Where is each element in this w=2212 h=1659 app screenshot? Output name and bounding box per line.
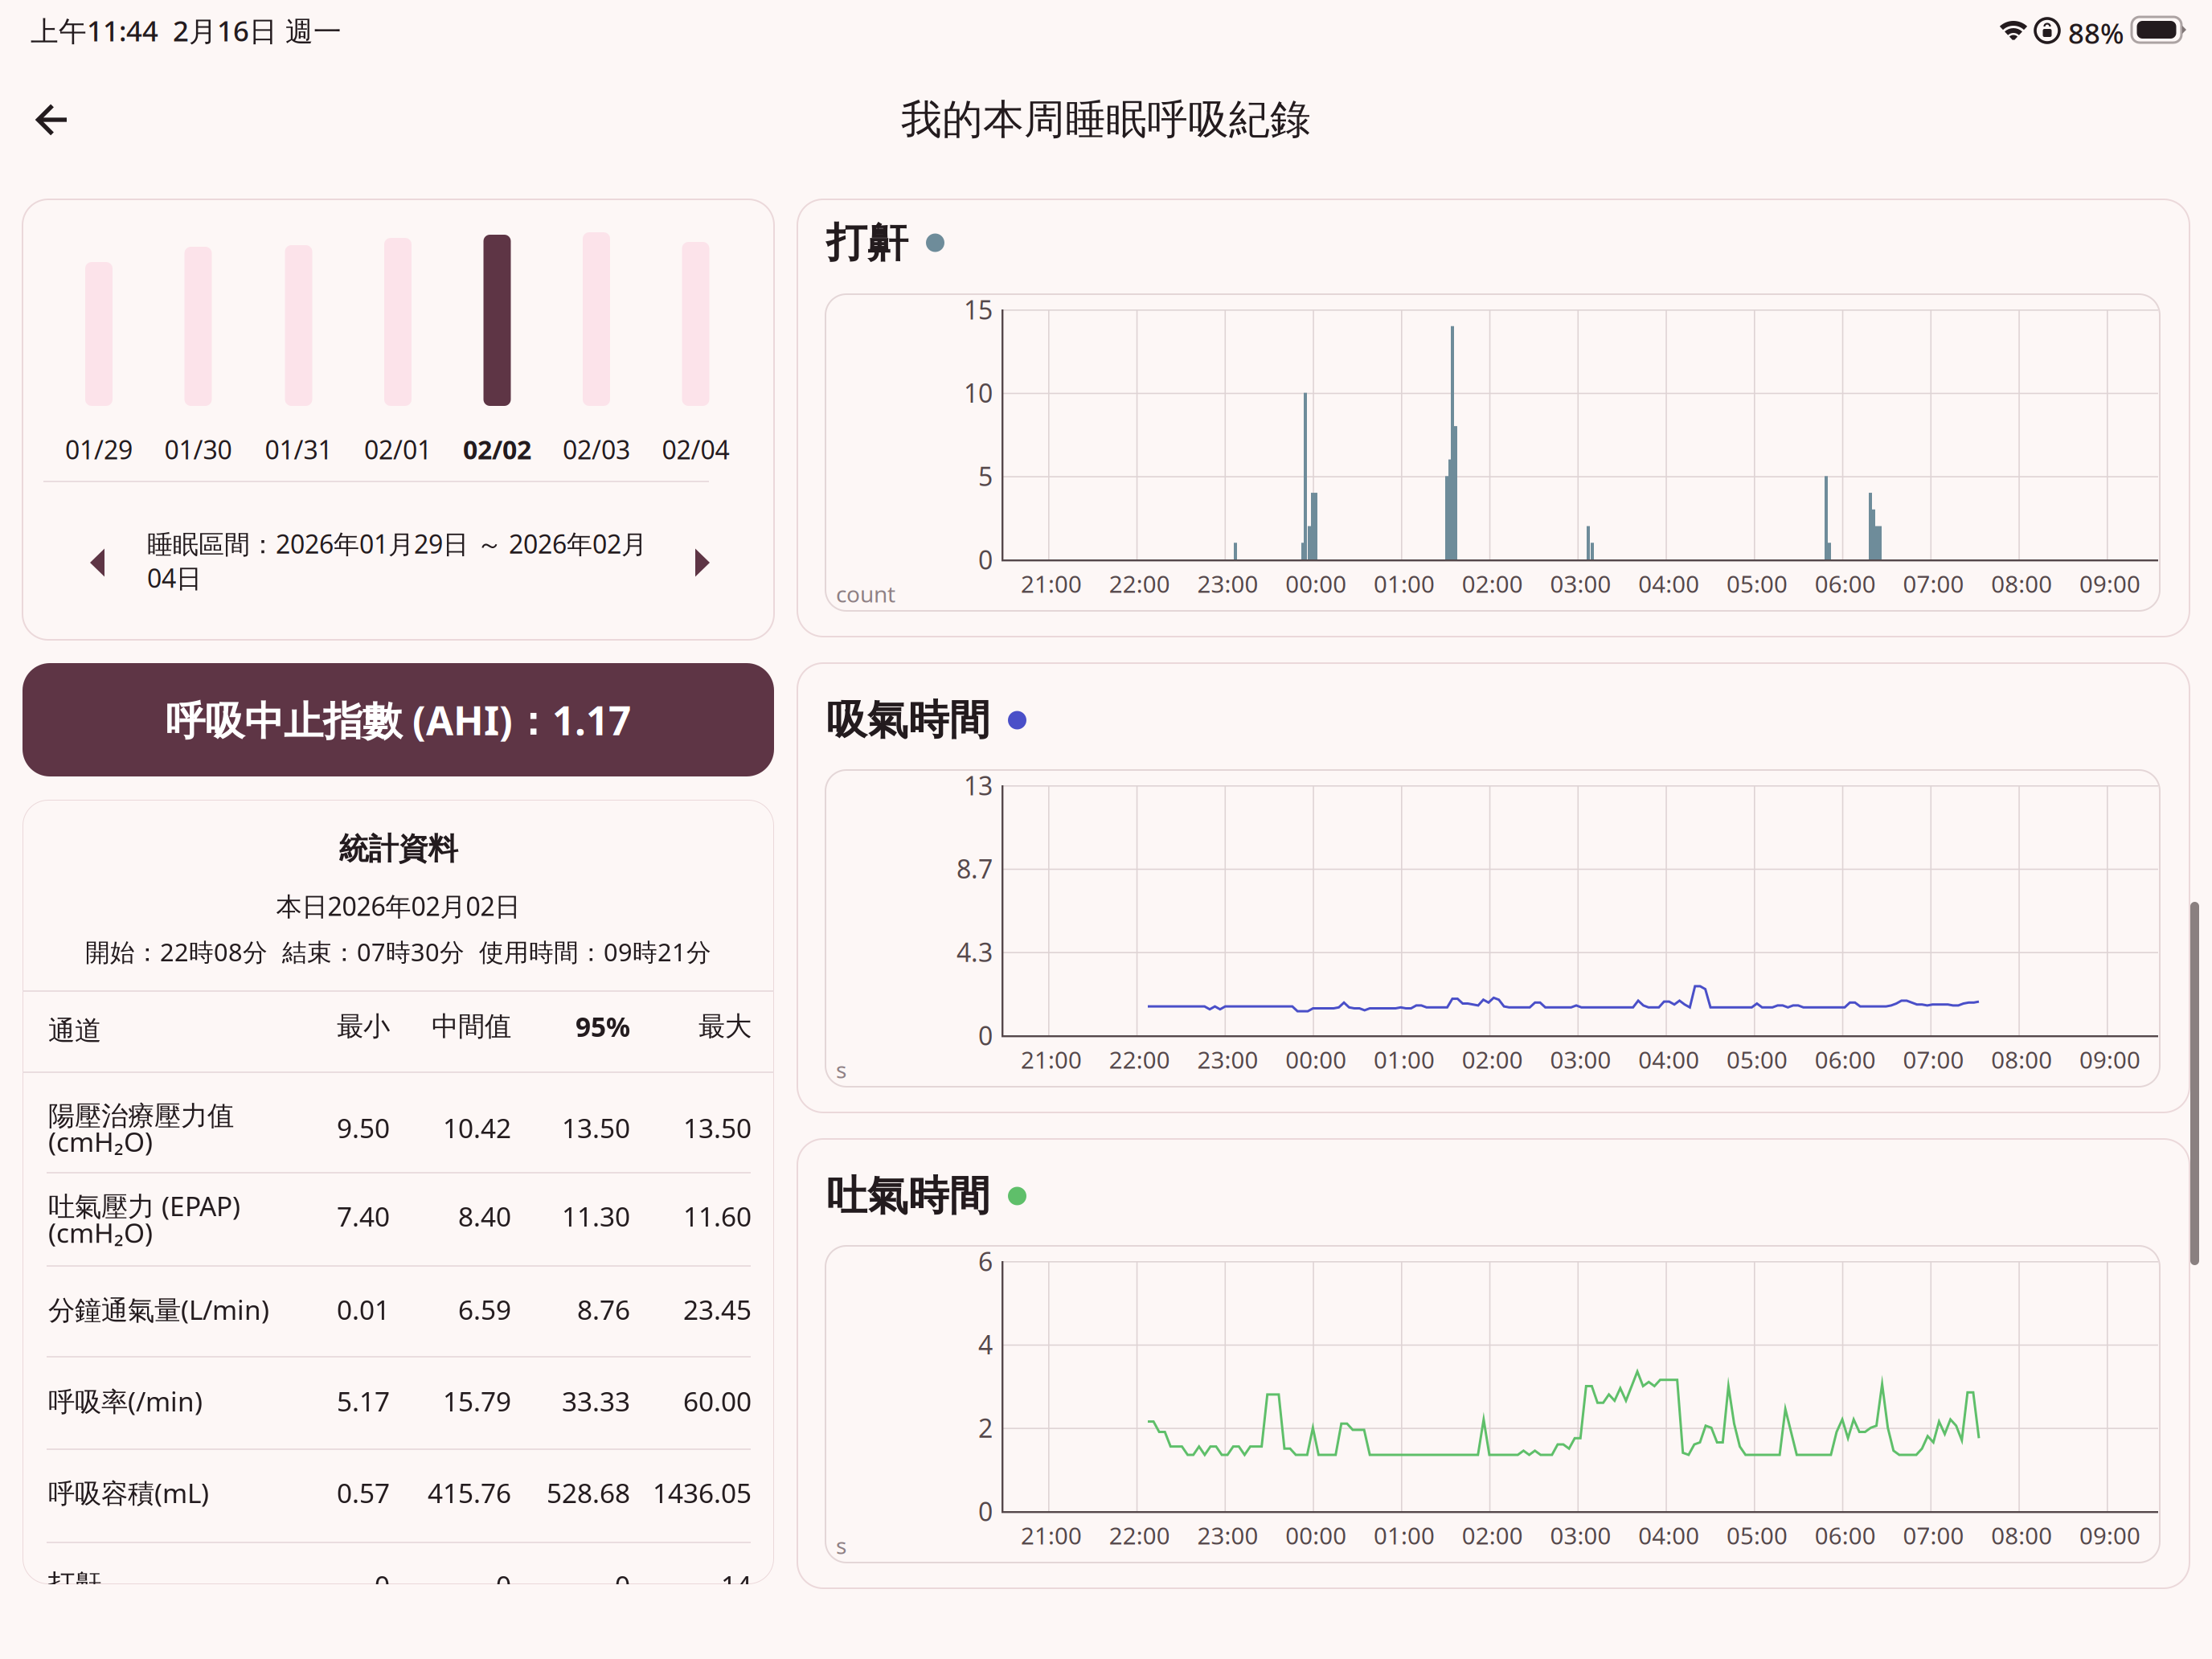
staticText: 呼吸率(/min) (48, 1383, 203, 1419)
staticText: 呼吸中止指數 (AHI)：1.17 (166, 693, 631, 746)
staticText: 呼吸容積(mL) (48, 1475, 209, 1511)
staticText: 09:00 (2079, 1044, 2140, 1075)
staticText: 11.60 (683, 1198, 752, 1234)
staticText: 0.01 (337, 1292, 390, 1327)
staticText: count (836, 579, 895, 609)
staticText: 8.76 (577, 1292, 630, 1327)
staticText: 9.50 (337, 1110, 390, 1146)
staticText: 吐氣時間 (826, 1171, 990, 1221)
button[interactable]: Back (15, 83, 89, 157)
staticText: 02/03 (563, 432, 630, 466)
staticText: 22:00 (1109, 1520, 1170, 1551)
button[interactable]: 呼吸中止指數 (AHI)：1.17 (23, 663, 774, 776)
staticText: 01:00 (1374, 1520, 1435, 1551)
staticText: 15.79 (443, 1383, 511, 1419)
staticText: 08:00 (1991, 1520, 2052, 1551)
staticText: 5 (978, 459, 993, 493)
staticText: 05:00 (1727, 1044, 1788, 1075)
staticText: 08:00 (1991, 568, 2052, 599)
staticText: 09:00 (2079, 568, 2140, 599)
staticText: 06:00 (1815, 1520, 1876, 1551)
staticText: 14 (721, 1567, 752, 1603)
staticText: 23:00 (1197, 1044, 1258, 1075)
staticText: (cmH₂O) (48, 1215, 153, 1250)
staticText: 13 (964, 768, 993, 802)
staticText: 04:00 (1638, 1044, 1699, 1075)
staticText: 打鼾 (826, 218, 908, 268)
staticText: 09:00 (2079, 1520, 2140, 1551)
staticText: 上午11:44 2月16日 週一 (31, 12, 342, 49)
staticText: 00:00 (1285, 568, 1346, 599)
staticText: 8.40 (458, 1198, 511, 1234)
staticText: 06:00 (1815, 568, 1876, 599)
staticText: 10.42 (443, 1110, 511, 1146)
staticText: 22:00 (1109, 568, 1170, 599)
staticText: 07:00 (1903, 568, 1964, 599)
staticText: 我的本周睡眠呼吸紀錄 (901, 95, 1311, 145)
staticText: 打鼾 (48, 1567, 101, 1600)
staticText: 通道 (48, 1014, 101, 1047)
staticText: 03:00 (1550, 568, 1611, 599)
staticText: (cmH₂O) (48, 1124, 153, 1159)
staticText: 6 (978, 1244, 993, 1278)
staticText: 05:00 (1727, 1520, 1788, 1551)
staticText: 分鐘通氣量(L/min) (48, 1292, 269, 1327)
staticText: 07:00 (1903, 1520, 1964, 1551)
staticText: 5.17 (337, 1383, 390, 1419)
staticText: 95% (576, 1009, 630, 1044)
staticText: 21:00 (1021, 1044, 1082, 1075)
staticText: 0 (375, 1567, 390, 1603)
staticText: 60.00 (683, 1383, 752, 1419)
staticText: s (836, 1530, 846, 1560)
staticText: 0.57 (337, 1475, 390, 1510)
staticText: 06:00 (1815, 1044, 1876, 1075)
staticText: 22:00 (1109, 1044, 1170, 1075)
staticText: 睡眠區間：2026年01月29日 ～ 2026年02月04日 (147, 526, 647, 595)
staticText: 最小 (337, 1010, 390, 1043)
staticText: 02/01 (364, 432, 432, 466)
staticText: 02:00 (1462, 568, 1523, 599)
staticText: 吸氣時間 (826, 695, 990, 745)
staticText: 02:00 (1462, 1044, 1523, 1075)
button[interactable]: Next week (671, 526, 734, 599)
staticText: 01/29 (65, 432, 133, 466)
staticText: 0 (615, 1567, 630, 1603)
staticText: 8.7 (956, 852, 993, 886)
staticText: 4.3 (956, 935, 993, 969)
staticText: 528.68 (547, 1475, 630, 1510)
staticText: 02/04 (662, 432, 729, 466)
staticText: 6.59 (458, 1292, 511, 1327)
staticText: 0 (978, 1018, 993, 1052)
staticText: 03:00 (1550, 1520, 1611, 1551)
staticText: 0 (978, 1494, 993, 1528)
staticText: 00:00 (1285, 1520, 1346, 1551)
staticText: 23.45 (683, 1292, 752, 1327)
staticText: 03:00 (1550, 1044, 1611, 1075)
staticText: 01/31 (265, 432, 332, 466)
staticText: 02/02 (463, 432, 531, 466)
staticText: 00:00 (1285, 1044, 1346, 1075)
staticText: s (836, 1055, 846, 1084)
staticText: 01:00 (1374, 1044, 1435, 1075)
staticText: 08:00 (1991, 1044, 2052, 1075)
staticText: 21:00 (1021, 568, 1082, 599)
staticText: 23:00 (1197, 568, 1258, 599)
staticText: 4 (978, 1327, 993, 1362)
staticText: 13.50 (683, 1110, 752, 1146)
staticText: 01:00 (1374, 568, 1435, 599)
staticText: 23:00 (1197, 1520, 1258, 1551)
staticText: 1436.05 (653, 1475, 752, 1510)
staticText: 05:00 (1727, 568, 1788, 599)
staticText: 2 (978, 1411, 993, 1445)
staticText: 04:00 (1638, 568, 1699, 599)
staticText: 21:00 (1021, 1520, 1082, 1551)
staticText: 10 (964, 376, 993, 410)
staticText: 吐氣壓力 (EPAP) (48, 1188, 240, 1224)
staticText: 本日2026年02月02日 (276, 889, 520, 923)
staticText: 0 (978, 542, 993, 577)
staticText: 15 (964, 292, 993, 327)
staticText: 0 (496, 1567, 511, 1603)
button[interactable]: Previous week (66, 526, 129, 599)
staticText: 陽壓治療壓力值 (48, 1100, 234, 1132)
staticText: 最大 (698, 1010, 752, 1043)
